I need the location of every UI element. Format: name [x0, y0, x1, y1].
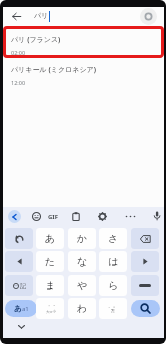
- button[interactable]: [18, 325, 25, 329]
- staticText: あ: [45, 232, 56, 245]
- staticText: 記: [20, 282, 26, 290]
- button[interactable]: パリ: [3, 7, 164, 26]
- staticText: パリ: [34, 11, 49, 20]
- button[interactable]: [153, 211, 161, 222]
- staticText: ま: [45, 279, 56, 292]
- button[interactable]: [131, 275, 159, 296]
- button[interactable]: [125, 215, 136, 218]
- staticText: ゛゜: [45, 304, 56, 310]
- button[interactable]: [72, 212, 80, 221]
- button[interactable]: GIF: [48, 213, 58, 221]
- button[interactable]: な: [68, 251, 96, 272]
- button[interactable]: ま: [36, 275, 64, 296]
- button[interactable]: [8, 210, 21, 223]
- staticText: 02:00: [11, 49, 26, 56]
- staticText: 12:00: [11, 79, 26, 86]
- staticText: た: [45, 255, 56, 268]
- button[interactable]: [98, 212, 107, 221]
- button[interactable]: 記: [5, 275, 33, 296]
- button[interactable]: あ: [5, 300, 37, 317]
- staticText: ら: [108, 279, 119, 292]
- button[interactable]: 、。: [99, 298, 127, 319]
- staticText: パリキール (ミクロネシア): [11, 65, 96, 75]
- button[interactable]: [3, 26, 164, 58]
- button[interactable]: わ: [68, 298, 96, 319]
- button[interactable]: [5, 251, 33, 272]
- button[interactable]: ら: [99, 275, 127, 296]
- button[interactable]: た: [36, 251, 64, 272]
- button[interactable]: や: [68, 275, 96, 296]
- button[interactable]: [131, 228, 159, 249]
- staticText: パリ (フランス): [11, 35, 61, 45]
- staticText: か: [77, 232, 88, 245]
- staticText: さ: [108, 232, 119, 245]
- staticText: な: [77, 255, 88, 268]
- staticText: わ: [77, 302, 88, 315]
- button[interactable]: ゛゜: [36, 298, 64, 319]
- staticText: 、。: [108, 302, 118, 308]
- button[interactable]: は: [99, 251, 127, 272]
- button[interactable]: [131, 251, 159, 272]
- staticText: は: [108, 255, 119, 268]
- button[interactable]: さ: [99, 228, 127, 249]
- staticText: あ: [14, 304, 22, 313]
- button[interactable]: [32, 212, 41, 221]
- button[interactable]: [5, 228, 33, 249]
- button[interactable]: [131, 300, 160, 317]
- staticText: ?!: [111, 308, 115, 315]
- staticText: や: [77, 279, 88, 292]
- staticText: 大⇔小: [46, 310, 56, 314]
- button[interactable]: あ: [36, 228, 64, 249]
- button[interactable]: か: [68, 228, 96, 249]
- staticText: a1: [22, 305, 29, 313]
